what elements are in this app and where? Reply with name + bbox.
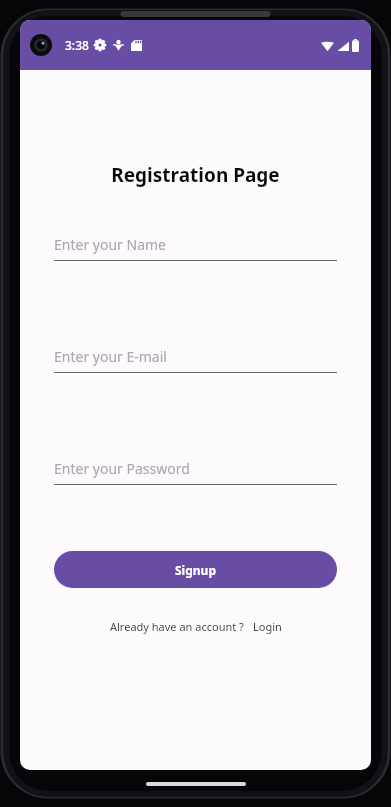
button[interactable]: Enter your Password bbox=[54, 459, 337, 485]
staticText: Registration Page bbox=[54, 162, 337, 188]
button[interactable]: Login bbox=[253, 619, 282, 634]
staticText: Signup bbox=[175, 562, 216, 578]
other: Battery bbox=[352, 39, 359, 52]
staticText: Enter your E-mail bbox=[54, 347, 167, 366]
staticText: Login bbox=[253, 619, 282, 634]
staticText: Enter your Name bbox=[54, 235, 166, 254]
button[interactable]: Enter your E-mail bbox=[54, 347, 337, 373]
button[interactable]: Signup bbox=[54, 551, 337, 588]
other: Signal bbox=[337, 40, 349, 52]
button[interactable]: Enter your Name bbox=[54, 235, 337, 261]
other: Settings bbox=[94, 39, 106, 51]
staticText: Enter your Password bbox=[54, 459, 190, 478]
staticText: Already have an account ? bbox=[110, 619, 244, 634]
other: Wi-Fi bbox=[321, 39, 334, 52]
staticText: 3:38 bbox=[65, 37, 89, 53]
